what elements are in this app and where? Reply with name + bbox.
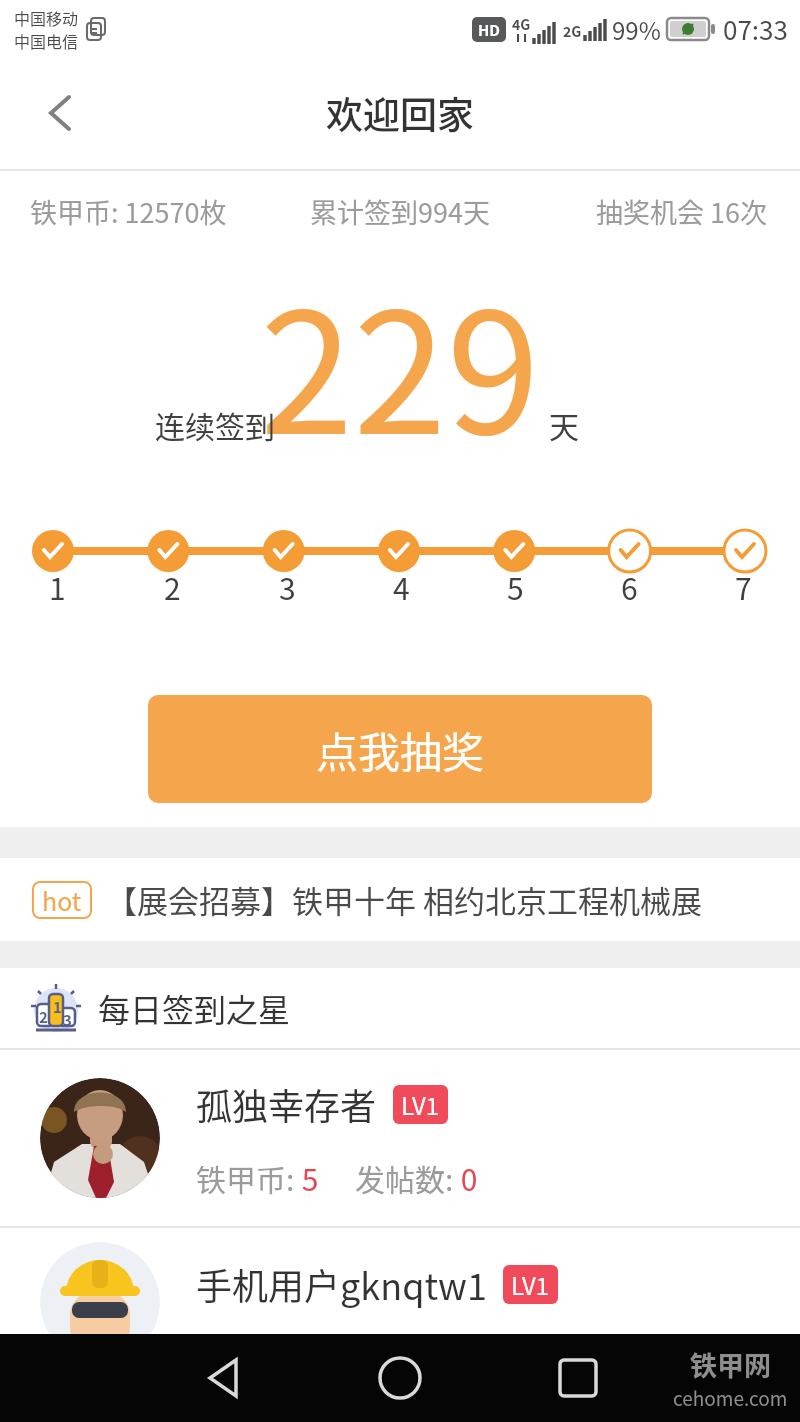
staticText: 中国移动 [14, 6, 79, 29]
staticText: LV1 [401, 1087, 440, 1122]
staticText: 0 [454, 1156, 478, 1199]
staticText: cehome.com [673, 1384, 788, 1412]
staticText: HD [478, 19, 501, 41]
staticText: 2 [39, 1006, 48, 1028]
staticText: 铁甲币: 12570枚 [30, 192, 227, 231]
staticText: 2G [563, 21, 582, 41]
staticText: LV1 [511, 1267, 550, 1302]
staticText: 229 [260, 239, 540, 459]
button[interactable]: 孤独幸存者 [0, 1050, 800, 1226]
staticText: 4G [512, 14, 531, 34]
button[interactable] [193, 1348, 253, 1408]
staticText: 6 [621, 565, 638, 608]
staticText: 点我抽奖 [316, 719, 485, 780]
staticText: 铁甲币: [196, 1156, 295, 1199]
button[interactable]: hot [0, 858, 800, 941]
staticText: 手机用户gknqtw1 [196, 1258, 487, 1310]
staticText: 欢迎回家 [326, 86, 474, 140]
staticText: 孤独幸存者 [196, 1078, 377, 1130]
button[interactable]: 点我抽奖 [148, 695, 652, 803]
staticText: 1 [53, 996, 62, 1018]
staticText: 5 [295, 1156, 319, 1199]
staticText: 7 [735, 565, 752, 608]
staticText: 4 [393, 565, 410, 608]
staticText: 发帖数: [355, 1156, 454, 1199]
button[interactable]: 手机用户gknqtw1 [0, 1228, 800, 1388]
staticText: 99% [612, 12, 661, 47]
staticText: 3 [63, 1009, 72, 1031]
staticText: 天 [549, 403, 579, 446]
staticText: 07:33 [723, 10, 788, 48]
staticText: 连续签到 [155, 403, 275, 446]
staticText: 中国电信 [14, 29, 79, 52]
staticText: 1 [49, 565, 66, 608]
staticText: 每日签到之星 [98, 985, 291, 1031]
staticText: 3 [279, 565, 296, 608]
staticText: 铁甲网 [690, 1345, 771, 1384]
button[interactable] [30, 83, 90, 143]
staticText: 【展会招募】铁甲十年 相约北京工程机械展 [106, 877, 702, 922]
button[interactable] [548, 1348, 608, 1408]
staticText: 2 [164, 565, 181, 608]
staticText: hot [42, 882, 82, 918]
staticText: 累计签到994天 [310, 192, 490, 231]
staticText: 抽奖机会 16次 [596, 192, 768, 231]
staticText: 5 [507, 565, 524, 608]
button[interactable] [370, 1348, 430, 1408]
